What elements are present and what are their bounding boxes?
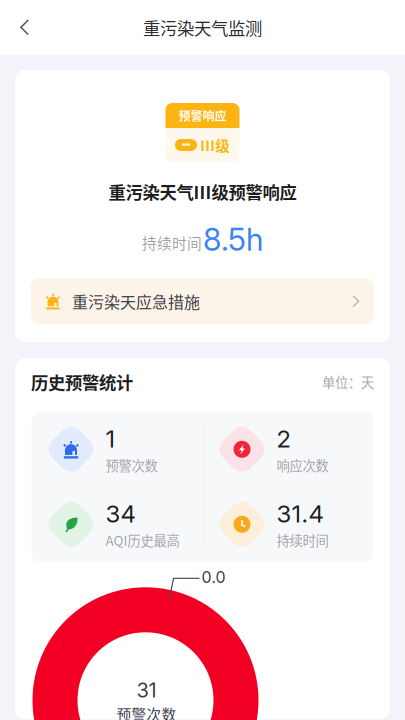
staticText: 持续时间 — [142, 232, 202, 253]
staticText: 重污染天应急措施 — [72, 290, 200, 313]
staticText: 2 — [276, 424, 290, 453]
staticText: 预警响应 — [178, 107, 226, 124]
staticText: 响应次数 — [276, 455, 328, 474]
button[interactable]: Back — [2, 4, 48, 50]
button[interactable]: 重污染天应急措施 — [31, 278, 374, 324]
staticText: 0.0 — [201, 568, 225, 587]
staticText: 重污染天气监测 — [143, 15, 262, 40]
staticText: 历史预警统计 — [31, 369, 133, 394]
staticText: 31.4 — [276, 499, 323, 528]
staticText: 31 — [136, 678, 156, 702]
staticText: 重污染天气III级预警响应 — [108, 179, 296, 204]
staticText: III级 — [200, 134, 230, 156]
staticText: AQI历史最高 — [105, 530, 179, 549]
staticText: 8.5h — [203, 221, 263, 258]
staticText: 1 — [105, 424, 115, 453]
staticText: 预警次数 — [116, 703, 176, 720]
staticText: 单位：天 — [322, 372, 374, 391]
staticText: 预警次数 — [105, 455, 157, 474]
staticText: 持续时间 — [276, 530, 328, 549]
staticText: 34 — [105, 499, 135, 528]
